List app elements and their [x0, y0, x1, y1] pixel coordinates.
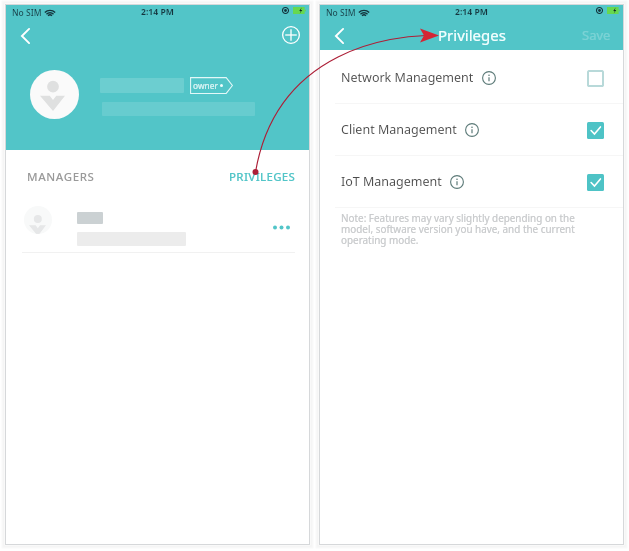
button[interactable]: Back [326, 23, 352, 49]
staticText: 2:14 PM [141, 6, 174, 18]
staticText: PRIVILEGES [229, 169, 296, 185]
staticText: Client Management [341, 121, 457, 138]
staticText: owner [193, 80, 218, 91]
staticText: No SIM [326, 7, 356, 19]
staticText: Save [582, 26, 611, 44]
button[interactable]: Add member [278, 22, 304, 48]
staticText: No SIM [12, 7, 42, 19]
button[interactable]: More options [5, 200, 310, 252]
button[interactable]: PRIVILEGES [215, 163, 310, 191]
staticText: IoT Management [341, 173, 442, 190]
staticText: MANAGERS [27, 169, 95, 185]
staticText: Note: Features may vary slightly dependi… [341, 211, 594, 247]
button[interactable]: Network Management [319, 52, 624, 103]
button[interactable]: IoT Management [319, 156, 624, 207]
staticText: Network Management [341, 69, 474, 86]
staticText: 2:14 PM [455, 6, 488, 18]
button[interactable]: Back [11, 22, 39, 50]
button[interactable]: Save [574, 22, 624, 48]
button[interactable]: More options [264, 210, 298, 244]
staticText: Privileges [438, 25, 506, 45]
button[interactable]: Client Management [319, 104, 624, 155]
button[interactable]: owner [190, 77, 233, 94]
